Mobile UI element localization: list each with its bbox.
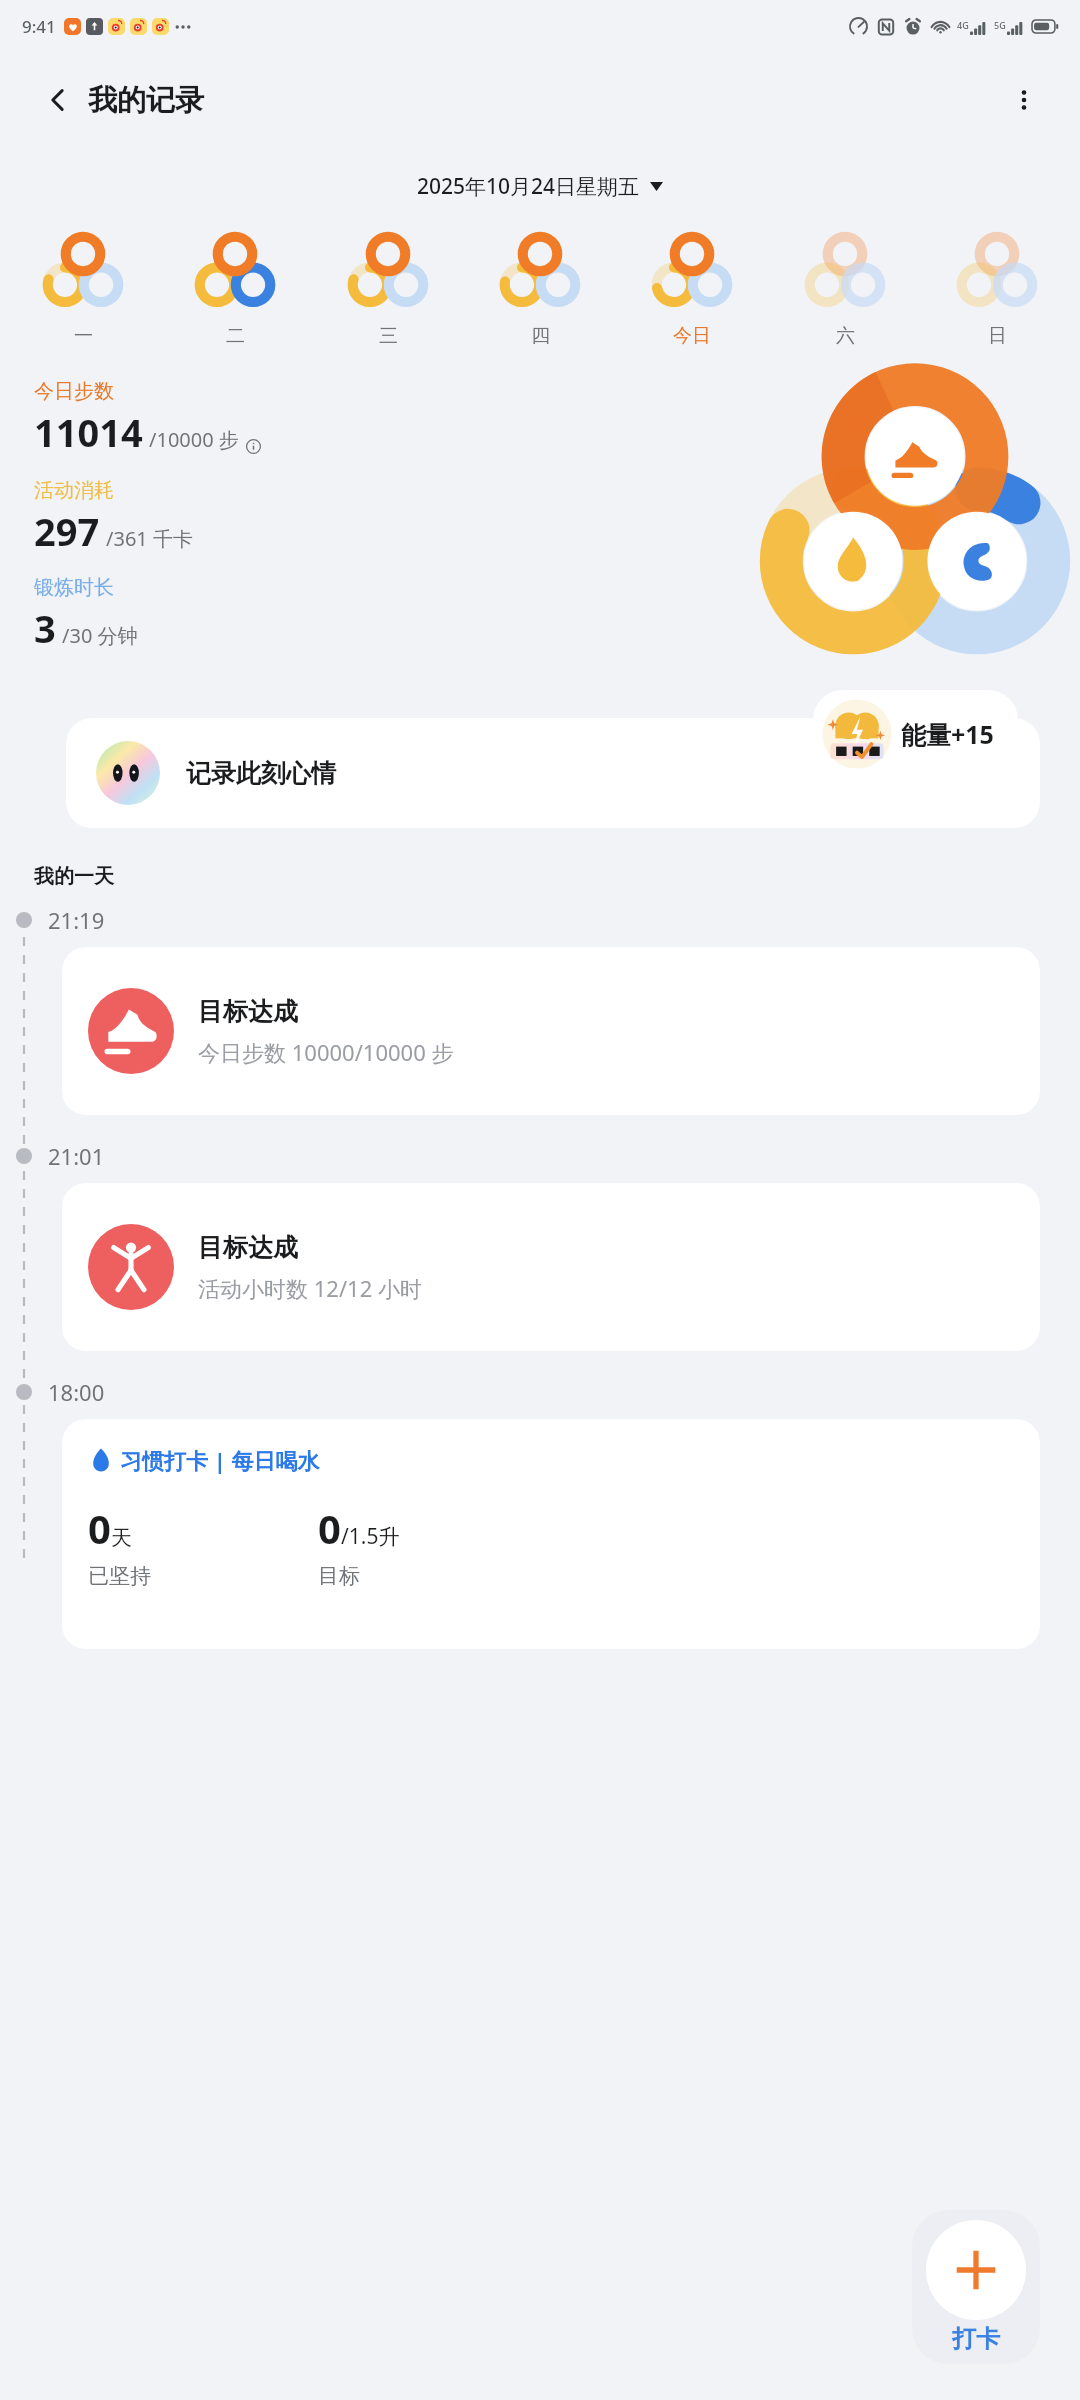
staticText: 打卡 <box>952 2324 1000 2354</box>
staticText: 已坚持 <box>88 1563 151 1589</box>
button[interactable]: 今日步数 <box>34 377 265 656</box>
staticText: 天 <box>111 1525 132 1551</box>
staticText: 297 <box>34 505 100 557</box>
button[interactable]: 能量+15 <box>813 690 1018 778</box>
staticText: 21:19 <box>48 905 105 935</box>
staticText: 三 <box>379 324 398 348</box>
staticText: 0 <box>318 1501 341 1555</box>
staticText: 5G <box>994 19 1006 31</box>
staticText: /30 分钟 <box>62 622 138 649</box>
staticText: 二 <box>226 324 245 348</box>
staticText: /361 千卡 <box>106 525 193 552</box>
staticText: 11014 <box>34 406 143 458</box>
staticText: 四 <box>531 324 550 348</box>
staticText: /1.5升 <box>341 1522 400 1551</box>
staticText: 六 <box>836 324 855 348</box>
staticText: 2025年10月24日星期五 <box>417 172 640 201</box>
staticText: 0 <box>88 1501 111 1555</box>
button[interactable]: 打卡 <box>912 2210 1040 2364</box>
staticText: 目标达成 <box>198 996 298 1027</box>
button[interactable]: 日 <box>928 224 1066 352</box>
staticText: 今日 <box>673 324 711 348</box>
button[interactable]: 目标达成 <box>62 947 1040 1115</box>
staticText: 4G <box>957 19 969 31</box>
button[interactable]: 2025年10月24日星期五 <box>405 166 675 207</box>
staticText: 习惯打卡 | 每日喝水 <box>120 1445 320 1475</box>
staticText: 活动小时数 12/12 小时 <box>198 1273 422 1303</box>
button[interactable]: 二 <box>166 224 304 352</box>
button[interactable]: 更多选项 <box>998 74 1050 126</box>
button[interactable]: 返回 <box>32 74 84 126</box>
button[interactable]: 六 <box>776 224 914 352</box>
staticText: 目标 <box>318 1563 360 1589</box>
staticText: 记录此刻心情 <box>186 758 336 789</box>
staticText: 3 <box>34 602 56 654</box>
button[interactable]: 三 <box>319 224 457 352</box>
staticText: 日 <box>988 324 1007 348</box>
staticText: 今日步数 <box>34 379 114 404</box>
staticText: 9:41 <box>22 15 56 38</box>
staticText: 目标达成 <box>198 1232 298 1263</box>
staticText: 18:00 <box>48 1377 105 1407</box>
staticText: /10000 步 <box>149 426 239 453</box>
staticText: 锻炼时长 <box>34 575 114 600</box>
button[interactable]: 今日 <box>623 224 761 352</box>
button[interactable]: 习惯打卡 | 每日喝水 <box>62 1419 1040 1649</box>
staticText: 我的一天 <box>34 864 114 889</box>
staticText: 活动消耗 <box>34 478 114 503</box>
staticText: 能量+15 <box>901 717 994 751</box>
button[interactable]: 目标达成 <box>62 1183 1040 1351</box>
staticText: 我的记录 <box>88 82 204 119</box>
button[interactable]: 记录此刻心情 <box>66 718 1040 828</box>
staticText: 21:01 <box>48 1141 105 1171</box>
staticText: 一 <box>74 324 93 348</box>
button[interactable]: 四 <box>471 224 609 352</box>
button[interactable]: 一 <box>14 224 152 352</box>
staticText: 今日步数 10000/10000 步 <box>198 1037 454 1067</box>
